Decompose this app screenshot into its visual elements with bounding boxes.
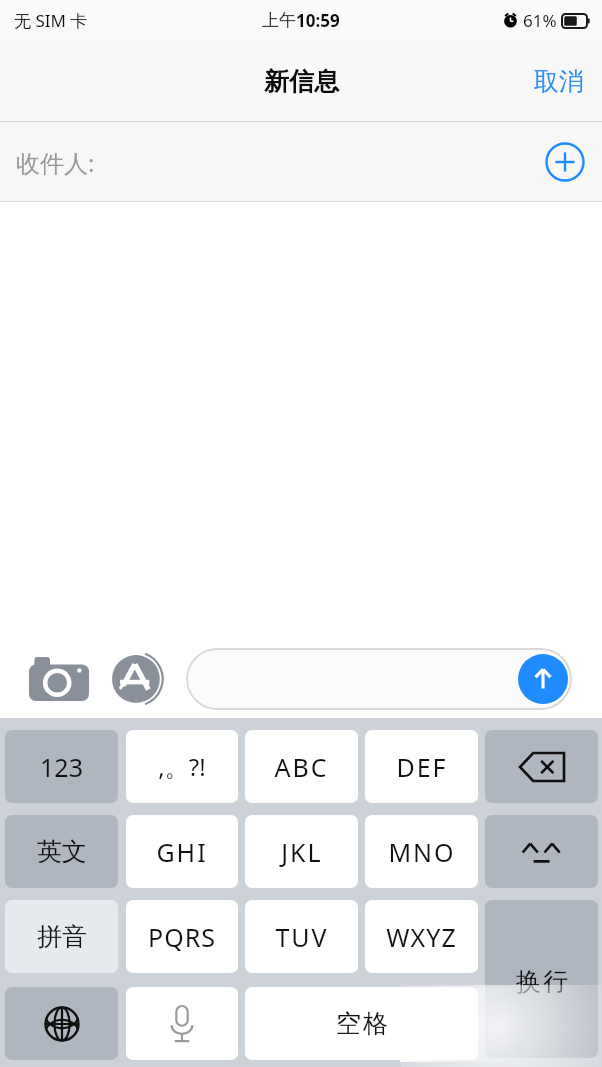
- staticText: 10:59: [296, 9, 340, 32]
- staticText: 取消: [534, 66, 584, 97]
- staticText: DEF: [396, 750, 448, 784]
- other: Dictate: [126, 987, 238, 1060]
- staticText: 英文: [37, 836, 87, 867]
- staticText: 收件人:: [16, 146, 95, 179]
- staticText: PQRS: [148, 920, 216, 954]
- button[interactable]: 123: [5, 730, 118, 803]
- staticText: 无 SIM 卡: [14, 9, 88, 32]
- button[interactable]: WXYZ: [365, 900, 478, 973]
- button[interactable]: PQRS: [126, 900, 238, 973]
- button[interactable]: ABC: [245, 730, 358, 803]
- button[interactable]: MNO: [365, 815, 478, 888]
- button[interactable]: ,。?!: [126, 730, 238, 803]
- staticText: GHI: [156, 835, 208, 869]
- button[interactable]: Send: [518, 654, 568, 704]
- other: Emoticon: [485, 815, 598, 888]
- staticText: 61%: [523, 9, 557, 32]
- button[interactable]: Switch keyboard: [5, 987, 118, 1060]
- button[interactable]: Dictate: [126, 987, 238, 1060]
- staticText: 空格: [335, 1008, 389, 1039]
- button[interactable]: Emoticon: [485, 815, 598, 888]
- staticText: JKL: [281, 835, 323, 869]
- staticText: WXYZ: [386, 920, 457, 954]
- staticText: 拼音: [37, 921, 87, 952]
- other: Backspace: [485, 730, 598, 803]
- button[interactable]: DEF: [365, 730, 478, 803]
- button[interactable]: 取消: [516, 56, 602, 107]
- staticText: ABC: [274, 750, 329, 784]
- staticText: 123: [40, 750, 83, 784]
- button[interactable]: TUV: [245, 900, 358, 973]
- button[interactable]: Add contact: [545, 142, 585, 182]
- button[interactable]: 换行: [485, 900, 598, 1058]
- button[interactable]: Backspace: [485, 730, 598, 803]
- staticText: ,。?!: [158, 750, 206, 783]
- other: Switch keyboard: [5, 987, 118, 1060]
- button[interactable]: 拼音: [5, 900, 118, 973]
- staticText: 上午: [262, 10, 296, 31]
- button[interactable]: App Store: [112, 653, 164, 705]
- button[interactable]: Camera: [28, 656, 90, 702]
- button[interactable]: 收件人:: [0, 122, 602, 202]
- button[interactable]: Send: [186, 648, 572, 710]
- button[interactable]: 空格: [245, 987, 478, 1060]
- staticText: 新信息: [264, 66, 339, 97]
- button[interactable]: JKL: [245, 815, 358, 888]
- staticText: MNO: [388, 835, 456, 869]
- staticText: TUV: [275, 920, 329, 954]
- button[interactable]: GHI: [126, 815, 238, 888]
- button[interactable]: 英文: [5, 815, 118, 888]
- staticText: 换行: [515, 966, 569, 997]
